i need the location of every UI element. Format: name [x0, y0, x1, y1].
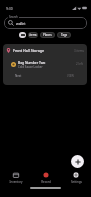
button[interactable]: Tags: [57, 32, 71, 38]
button[interactable]: Record: [31, 170, 61, 186]
button[interactable]: Inventory: [0, 170, 31, 186]
staticText: wallet: [16, 21, 26, 26]
staticText: 2 left: [76, 62, 83, 66]
staticText: 3 items: [74, 49, 84, 53]
button[interactable]: wallet: [4, 17, 87, 29]
button[interactable]: Places: [40, 32, 55, 38]
button[interactable]: Add item: [71, 155, 84, 168]
button[interactable]: Settings: [61, 170, 91, 186]
staticText: Search: [9, 15, 18, 19]
staticText: VIEW: [67, 74, 75, 78]
staticText: Next: [15, 74, 22, 78]
staticText: Record: [41, 180, 51, 184]
staticText: Cold Sauce Locker: [18, 65, 43, 69]
staticText: Places: [43, 33, 52, 37]
staticText: Inventory: [9, 180, 23, 184]
staticText: Items: [29, 33, 37, 37]
staticText: Tags: [61, 33, 68, 37]
button[interactable]: Items: [28, 32, 38, 38]
staticText: 9:30: [6, 6, 13, 11]
button[interactable]: Selected filter: [19, 32, 26, 38]
staticText: Settings: [71, 180, 82, 184]
staticText: Front Hall Storage: [13, 48, 45, 53]
button[interactable]: Front Hall Storage: [3, 44, 87, 85]
staticText: Bag Number Two: [18, 60, 46, 64]
